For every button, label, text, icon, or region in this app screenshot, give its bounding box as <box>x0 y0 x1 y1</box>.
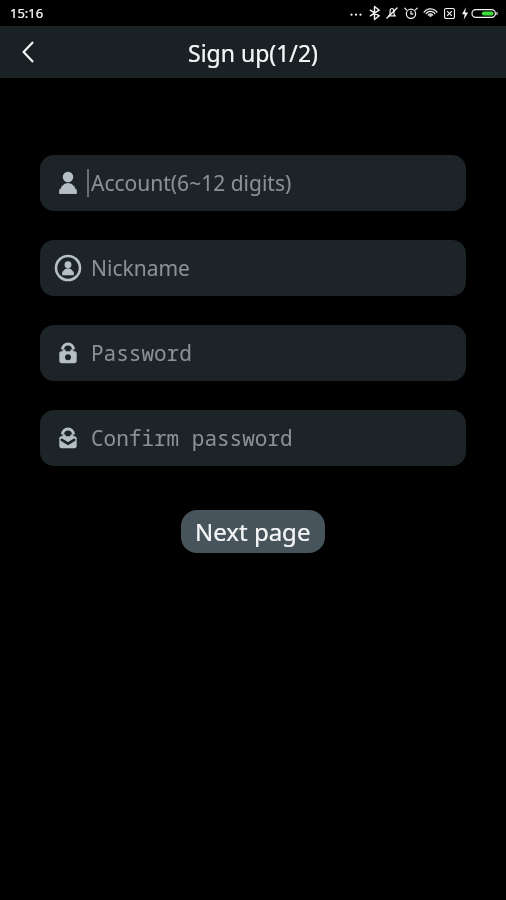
staticText: 15:16 <box>10 4 44 22</box>
staticText: Next page <box>195 515 311 548</box>
staticText: Account(6~12 digits) <box>91 169 292 198</box>
button[interactable]: Confirm password <box>40 410 466 466</box>
button[interactable]: Back <box>0 26 56 78</box>
staticText: Password <box>91 339 192 368</box>
button[interactable]: Password <box>40 325 466 381</box>
button[interactable]: Account(6~12 digits) <box>40 155 466 211</box>
button[interactable]: Nickname <box>40 240 466 296</box>
staticText: Nickname <box>91 254 190 283</box>
staticText: Confirm password <box>91 424 293 453</box>
staticText: Sign up(1/2) <box>188 37 318 68</box>
button[interactable]: Next page <box>181 510 325 553</box>
